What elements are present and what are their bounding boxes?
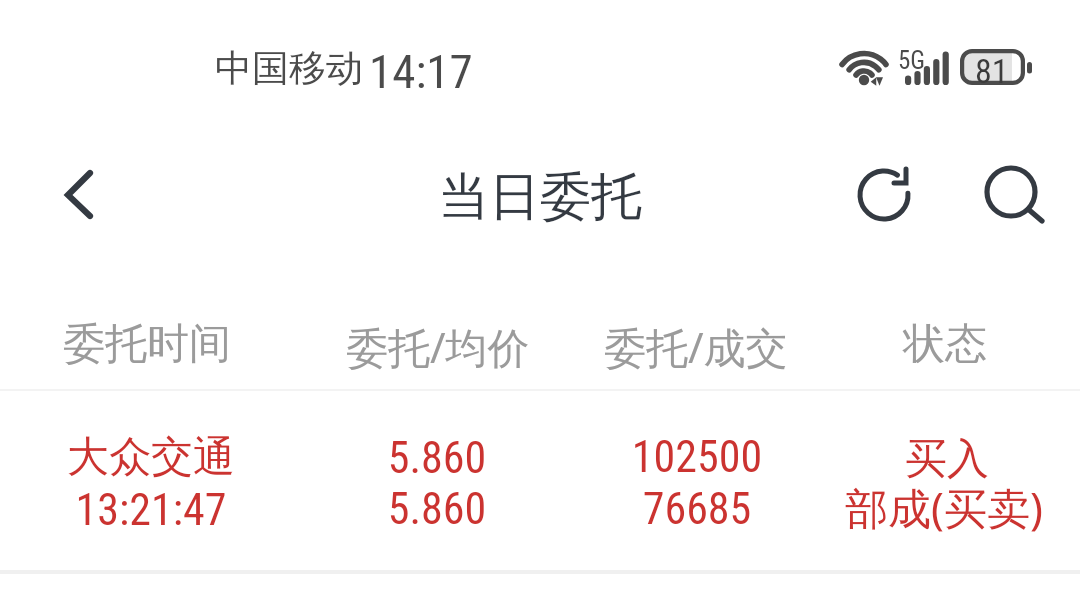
staticText: 5.860 (267, 432, 607, 484)
staticText: 委托/均价 (346, 318, 530, 375)
button[interactable]: Back (25, 143, 129, 247)
staticText: 委托时间 (63, 318, 231, 371)
staticText: 部成(买卖) (774, 478, 1080, 537)
staticText: 102500 (527, 431, 867, 483)
staticText: 13:21:47 (0, 484, 321, 536)
staticText: 5G (898, 46, 926, 75)
staticText: 状态 (903, 318, 987, 371)
staticText: 76685 (527, 483, 867, 535)
staticText: 大众交通 (0, 431, 321, 484)
staticText: 5.860 (267, 483, 607, 535)
staticText: 买入 (777, 433, 1080, 486)
button[interactable]: Refresh (832, 143, 936, 247)
staticText: 14:17 (369, 44, 473, 99)
staticText: 中国移动 (215, 45, 363, 92)
staticText: 委托/成交 (604, 318, 788, 375)
button[interactable]: 大众交通 (0, 391, 1080, 571)
staticText: 81 (975, 51, 1009, 91)
button[interactable]: Search (965, 145, 1069, 249)
staticText: 当日委托 (438, 165, 642, 229)
